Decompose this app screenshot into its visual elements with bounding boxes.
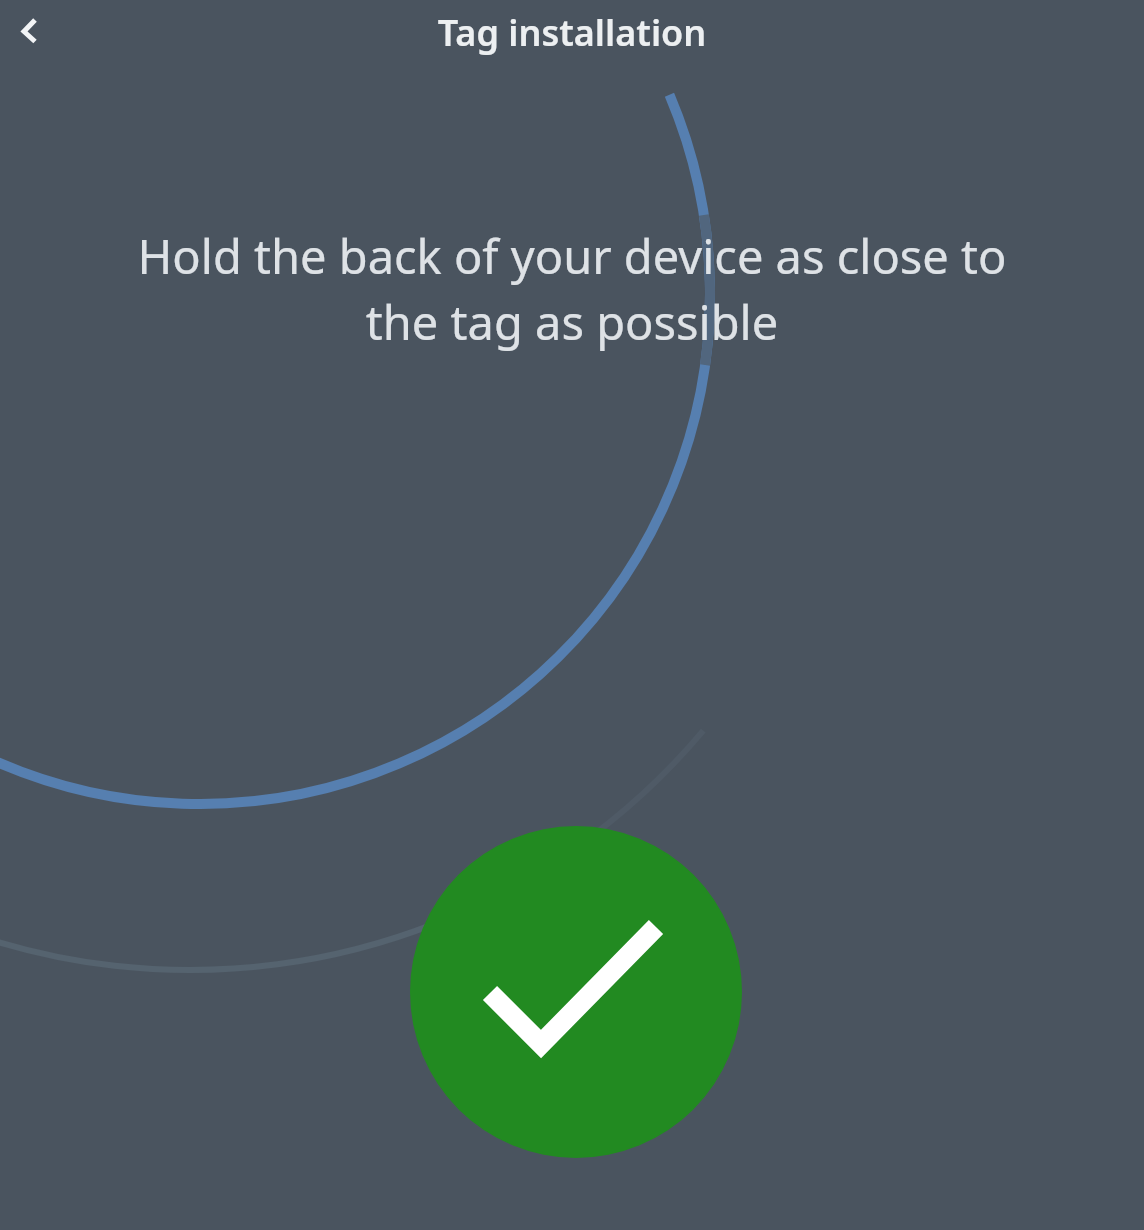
staticText: Hold the back of your device as close to… (0, 224, 1144, 354)
staticText: Tag installation (0, 8, 1144, 57)
button[interactable] (410, 826, 742, 1158)
button[interactable] (6, 7, 54, 55)
